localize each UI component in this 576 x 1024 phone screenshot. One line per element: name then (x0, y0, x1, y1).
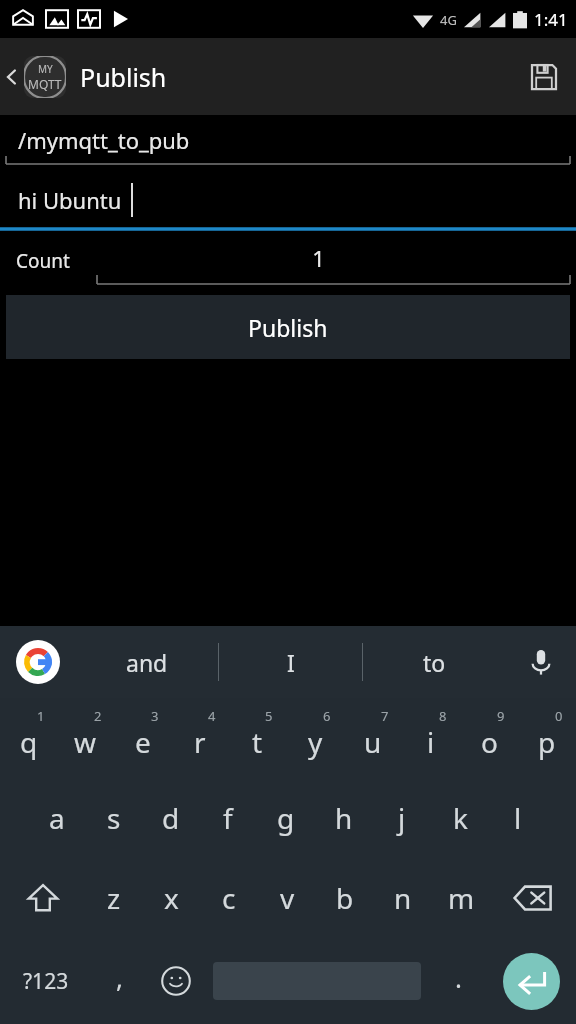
button[interactable]: g (257, 778, 315, 858)
staticText: ?123 (23, 967, 69, 996)
button[interactable]: x (142, 858, 200, 938)
button[interactable]: z (85, 858, 142, 938)
staticText: 0 (555, 707, 563, 725)
button[interactable]: Enter (486, 938, 576, 1024)
button[interactable]: s (85, 778, 142, 858)
staticText: h (335, 799, 353, 837)
button[interactable]: 2 (57, 698, 114, 778)
staticText: MQTT (28, 76, 62, 92)
staticText: 5 (265, 707, 273, 725)
button[interactable]: and (76, 626, 218, 698)
button[interactable]: I (219, 626, 362, 698)
button[interactable]: Save (512, 45, 576, 109)
button[interactable]: 7 (344, 698, 402, 778)
staticText: 1 (37, 707, 45, 725)
staticText: j (398, 799, 406, 837)
button[interactable]: 6 (286, 698, 344, 778)
button[interactable]: Shift (0, 858, 85, 938)
staticText: i (427, 723, 435, 761)
button[interactable]: 9 (460, 698, 518, 778)
staticText: 4G (440, 11, 457, 29)
staticText: hi Ubuntu (18, 185, 122, 215)
staticText: l (514, 799, 522, 837)
button[interactable]: m (432, 858, 490, 938)
staticText: m (448, 879, 475, 917)
staticText: to (423, 647, 446, 678)
button[interactable]: d (142, 778, 199, 858)
staticText: x (164, 879, 179, 917)
button[interactable]: h (315, 778, 373, 858)
button[interactable]: v (258, 858, 316, 938)
button[interactable]: k (431, 778, 489, 858)
button[interactable]: b (316, 858, 374, 938)
button[interactable]: f (199, 778, 257, 858)
button[interactable]: ?123 (0, 938, 91, 1024)
button[interactable]: . (430, 938, 486, 1024)
staticText: q (20, 723, 38, 761)
staticText: 1:41 (534, 8, 568, 31)
staticText: t (252, 723, 263, 761)
button[interactable]: n (374, 858, 432, 938)
staticText: b (336, 879, 354, 917)
staticText: z (107, 879, 121, 917)
staticText: p (538, 723, 556, 761)
button[interactable]: 1 (97, 233, 576, 293)
button[interactable]: /mymqtt_to_pub (0, 115, 576, 170)
staticText: MY (38, 62, 53, 76)
staticText: 6 (323, 707, 331, 725)
button[interactable]: l (489, 778, 547, 858)
button[interactable]: , (91, 938, 148, 1024)
staticText: I (287, 647, 295, 678)
staticText: d (162, 799, 180, 837)
button[interactable]: 0 (518, 698, 576, 778)
staticText: 9 (497, 707, 505, 725)
staticText: g (277, 799, 295, 837)
button[interactable]: a (28, 778, 85, 858)
staticText: a (49, 799, 65, 837)
staticText: r (194, 723, 206, 761)
button[interactable]: Backspace (490, 858, 576, 938)
button[interactable]: Space (204, 938, 430, 1024)
button[interactable]: 4 (171, 698, 228, 778)
button[interactable]: 8 (402, 698, 460, 778)
staticText: Count (16, 248, 70, 274)
staticText: and (126, 647, 168, 678)
button[interactable]: c (200, 858, 258, 938)
button[interactable]: Emoji (148, 938, 204, 1024)
staticText: f (223, 799, 233, 837)
staticText: . (455, 960, 462, 995)
staticText: , (116, 960, 123, 995)
staticText: 4 (208, 707, 216, 725)
button[interactable]: hi Ubuntu (0, 170, 576, 233)
button[interactable]: Voice input (506, 626, 576, 698)
staticText: c (222, 879, 236, 917)
button[interactable]: 5 (228, 698, 286, 778)
staticText: 7 (381, 707, 389, 725)
staticText: Publish (248, 312, 328, 343)
staticText: y (308, 723, 323, 761)
staticText: s (107, 799, 121, 837)
staticText: 2 (94, 707, 102, 725)
staticText: 1 (312, 243, 325, 273)
button[interactable]: Publish (6, 295, 570, 359)
staticText: Publish (80, 60, 167, 94)
button[interactable]: 1 (0, 698, 57, 778)
staticText: v (280, 879, 295, 917)
button[interactable]: 3 (114, 698, 171, 778)
staticText: 8 (439, 707, 447, 725)
button[interactable]: Navigate up (0, 49, 24, 105)
staticText: k (453, 799, 468, 837)
button[interactable]: Google (0, 626, 76, 698)
staticText: /mymqtt_to_pub (18, 125, 190, 155)
staticText: e (135, 723, 151, 761)
staticText: n (394, 879, 412, 917)
staticText: o (481, 723, 498, 761)
staticText: w (74, 723, 97, 761)
button[interactable]: to (363, 626, 506, 698)
staticText: u (364, 723, 382, 761)
staticText: 3 (151, 707, 159, 725)
button[interactable]: j (373, 778, 431, 858)
